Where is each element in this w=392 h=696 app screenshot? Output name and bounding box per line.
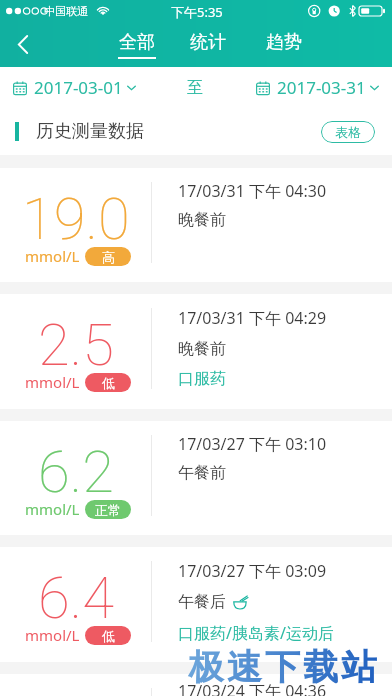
staticText: 极速下载站 xyxy=(187,645,378,689)
staticText: 午餐前 xyxy=(178,463,226,483)
staticText: 午餐后 xyxy=(178,592,226,612)
staticText: 至 xyxy=(187,78,203,98)
staticText: 17/03/27 下午 03:10 xyxy=(178,433,327,455)
staticText: mmol/L xyxy=(25,625,80,645)
staticText: 2017-03-01 xyxy=(34,76,123,99)
staticText: 2017-03-31 xyxy=(277,76,366,99)
button[interactable]: 2017-03-31 xyxy=(256,67,379,108)
button[interactable]: 2.5 xyxy=(0,294,392,409)
staticText: 2.5 xyxy=(38,311,114,379)
staticText: 6.4 xyxy=(38,564,114,632)
button[interactable]: 6.2 xyxy=(0,421,392,535)
staticText: mmol/L xyxy=(25,246,80,266)
staticText: 低 xyxy=(102,628,115,644)
staticText: 表格 xyxy=(335,124,361,140)
button[interactable]: 表格 xyxy=(321,121,375,143)
staticText: 17/03/31 下午 04:29 xyxy=(178,307,327,329)
staticText: 全部 xyxy=(119,31,155,54)
button[interactable]: 2017-03-01 xyxy=(13,67,136,108)
staticText: 17/03/27 下午 03:09 xyxy=(178,560,327,582)
staticText: mmol/L xyxy=(25,499,80,519)
button[interactable]: 19.0 xyxy=(0,168,392,282)
button[interactable]: 统计 xyxy=(189,22,227,67)
staticText: 17/03/24 下午 04:36 xyxy=(178,680,327,696)
staticText: 6.2 xyxy=(38,438,114,506)
staticText: 口服药/胰岛素/运动后 xyxy=(178,622,334,644)
staticText: 正常 xyxy=(95,502,121,518)
button[interactable]: Back xyxy=(0,22,46,67)
staticText: 17/03/31 下午 04:30 xyxy=(178,180,327,202)
button[interactable]: 全部 xyxy=(118,22,156,67)
staticText: 晚餐前 xyxy=(178,210,226,230)
staticText: mmol/L xyxy=(25,372,80,392)
button[interactable]: 6.4 xyxy=(0,547,392,662)
staticText: 历史测量数据 xyxy=(36,120,144,143)
staticText: 下午5:35 xyxy=(171,3,223,21)
staticText: 中国联通 xyxy=(44,4,88,18)
staticText: 19.0 xyxy=(22,185,130,253)
staticText: 口服药 xyxy=(178,369,226,389)
staticText: 统计 xyxy=(190,31,226,54)
button[interactable]: 5.0 xyxy=(0,674,392,696)
staticText: 高 xyxy=(102,249,115,265)
staticText: 晚餐前 xyxy=(178,339,226,359)
staticText: 低 xyxy=(102,375,115,391)
button[interactable]: 趋势 xyxy=(265,22,303,67)
staticText: 趋势 xyxy=(266,31,302,54)
